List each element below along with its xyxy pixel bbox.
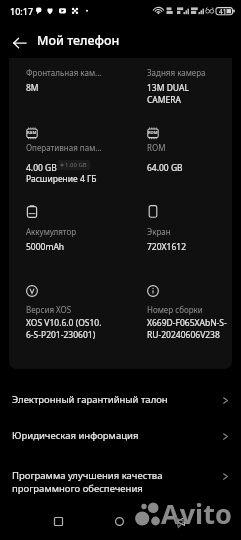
staticText: 13M DUAL <box>147 82 189 94</box>
staticText: Номер сборки <box>147 304 232 315</box>
staticText: Экран <box>147 226 232 237</box>
button[interactable]: Back <box>8 31 32 55</box>
staticText: программного обеспечения <box>12 482 143 495</box>
button[interactable]: Recent apps <box>46 509 70 533</box>
staticText: 64.00 GB <box>147 162 183 174</box>
staticText: Расширение 4 ГБ <box>26 173 97 185</box>
staticText: XOS V10.6.0 (OS10. <box>26 317 102 329</box>
staticText: 720X1612 <box>147 241 187 253</box>
staticText: 5000mAh <box>26 241 65 253</box>
staticText: X669D-F065XAbN-S- <box>147 317 227 329</box>
staticText: Электронный гарантийный талон <box>12 393 168 406</box>
staticText: 10:17 <box>10 5 34 17</box>
staticText: Оперативная пам... <box>26 142 114 153</box>
staticText: RAM <box>27 130 37 135</box>
staticText: 41 <box>219 7 227 16</box>
staticText: ROM <box>147 142 232 153</box>
button[interactable]: Back <box>168 509 192 533</box>
staticText: Юридическая информация <box>12 429 139 442</box>
staticText: 8M <box>26 82 39 94</box>
button[interactable]: Home <box>107 509 131 533</box>
staticText: ROM <box>148 130 158 135</box>
staticText: Avito <box>161 495 232 532</box>
staticText: Аккумулятор <box>26 226 114 237</box>
staticText: 4.00 GB <box>26 162 57 174</box>
staticText: Задняя камера <box>147 67 232 78</box>
staticText: Программа улучшения качества <box>12 469 163 482</box>
staticText: Мой телефон <box>37 32 120 49</box>
button[interactable]: Электронный гарантийный талон <box>0 382 241 415</box>
button[interactable]: Программа улучшения качества <box>0 455 241 500</box>
staticText: Фронтальная кам... <box>26 67 114 78</box>
staticText: Версия XOS <box>26 304 114 315</box>
staticText: RU-20240606V238 <box>147 329 220 341</box>
staticText: 1.00 GB <box>65 161 87 169</box>
button[interactable]: Юридическая информация <box>0 418 241 451</box>
staticText: CAMERA <box>147 94 181 106</box>
staticText: 6-S-P201-230601) <box>26 329 96 341</box>
